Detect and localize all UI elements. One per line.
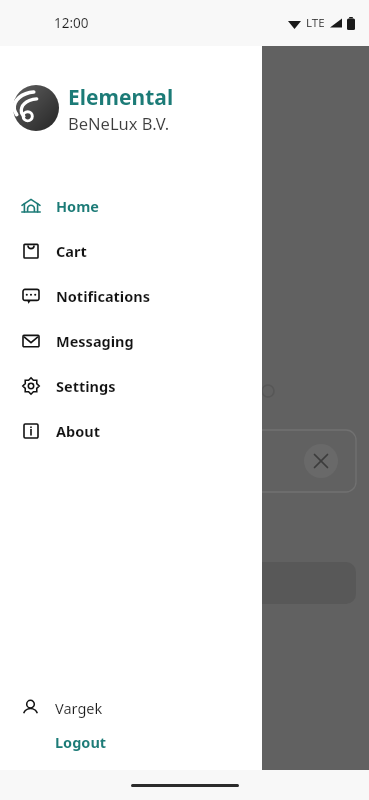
button[interactable]: Home xyxy=(0,183,262,228)
staticText: Elemental xyxy=(68,83,174,112)
staticText: About xyxy=(56,421,100,441)
button[interactable]: Vargek xyxy=(0,690,262,726)
staticText: Vargek xyxy=(55,698,103,718)
other: Notifications xyxy=(21,286,41,306)
other: Messaging xyxy=(21,331,41,351)
staticText: LTE xyxy=(306,15,325,31)
staticText: Messaging xyxy=(56,331,134,351)
button[interactable]: Notifications xyxy=(0,273,262,318)
staticText: 12:00 xyxy=(54,14,89,32)
other: About xyxy=(21,421,41,441)
staticText: Home xyxy=(56,196,99,216)
button[interactable]: Cart xyxy=(0,228,262,273)
other: Cart xyxy=(21,241,41,261)
staticText: Cart xyxy=(56,241,87,261)
other: Settings xyxy=(21,376,41,396)
staticText: Notifications xyxy=(56,286,150,306)
other: Home xyxy=(21,196,41,216)
button[interactable]: Settings xyxy=(0,363,262,408)
button[interactable]: Messaging xyxy=(0,318,262,363)
button[interactable]: Logout xyxy=(55,726,107,758)
staticText: Settings xyxy=(56,376,116,396)
staticText: Logout xyxy=(55,732,107,752)
staticText: BeNeLux B.V. xyxy=(68,112,170,134)
button[interactable]: About xyxy=(0,408,262,453)
